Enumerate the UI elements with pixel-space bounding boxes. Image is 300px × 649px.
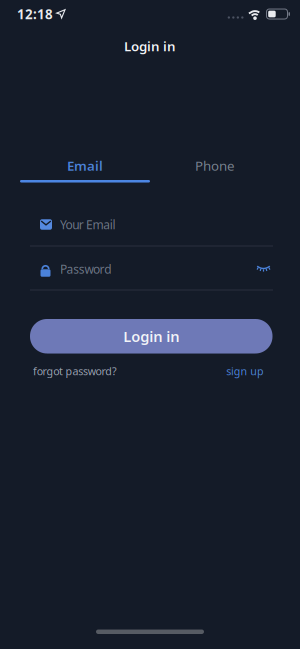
button[interactable]: sign up — [226, 364, 264, 378]
button[interactable]: Password — [0, 261, 256, 277]
button[interactable]: Show password — [256, 265, 300, 273]
staticText: Password — [60, 261, 111, 277]
button[interactable]: Login in — [30, 319, 272, 353]
staticText: Your Email — [60, 216, 115, 232]
button[interactable]: forgot password? — [33, 364, 117, 378]
staticText: sign up — [226, 364, 264, 378]
staticText: Email — [67, 157, 103, 174]
staticText: Login in — [124, 37, 176, 55]
button[interactable]: Email — [20, 157, 150, 182]
staticText: Login in — [123, 326, 179, 346]
staticText: forgot password? — [33, 364, 117, 378]
staticText: 12:18 — [17, 5, 53, 23]
button[interactable]: Phone — [150, 157, 280, 182]
staticText: Phone — [195, 157, 235, 174]
button[interactable]: Your Email — [0, 214, 300, 234]
